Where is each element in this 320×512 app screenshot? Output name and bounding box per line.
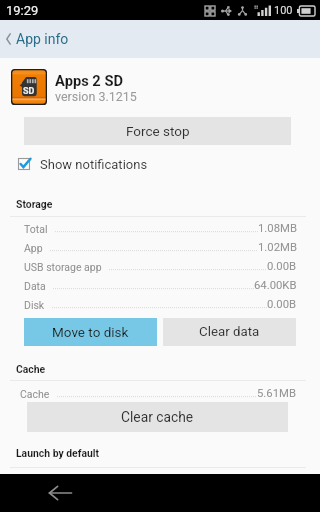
staticText: App info [16,31,69,47]
staticText: Cache [20,388,50,400]
staticText: Cache [16,363,46,375]
staticText: 0.00B [267,298,297,311]
staticText: Total [24,223,48,235]
button[interactable]: Clear cache [27,402,288,432]
staticText: 19:29 [6,3,39,18]
button[interactable]: Show notifications [0,152,320,176]
staticText: 64.00KB [254,279,297,292]
staticText: Show notifications [40,157,148,172]
staticText: 100 [274,4,293,17]
button[interactable]: Move to disk [24,318,157,346]
staticText: Apps 2 SD [55,72,124,89]
staticText: Clear data [199,324,260,340]
button[interactable]: App info [0,20,320,58]
staticText: version 3.1215 [55,89,137,104]
staticText: Launch by default [16,447,100,459]
staticText: 1.08MB [258,222,297,235]
staticText: Storage [16,198,53,210]
staticText: Disk [24,299,45,311]
staticText: App [24,242,43,254]
button[interactable]: Back [38,474,82,512]
staticText: Data [24,280,46,292]
staticText: 1.02MB [258,241,297,254]
staticText: USB storage app [24,261,102,273]
button[interactable]: Clear data [163,318,296,346]
staticText: 0.00B [267,260,297,273]
button[interactable]: Force stop [24,117,291,145]
staticText: Force stop [126,123,190,139]
staticText: Clear cache [121,409,194,425]
staticText: 5.61MB [257,387,296,400]
staticText: SD [23,86,35,97]
staticText: Move to disk [52,324,129,340]
